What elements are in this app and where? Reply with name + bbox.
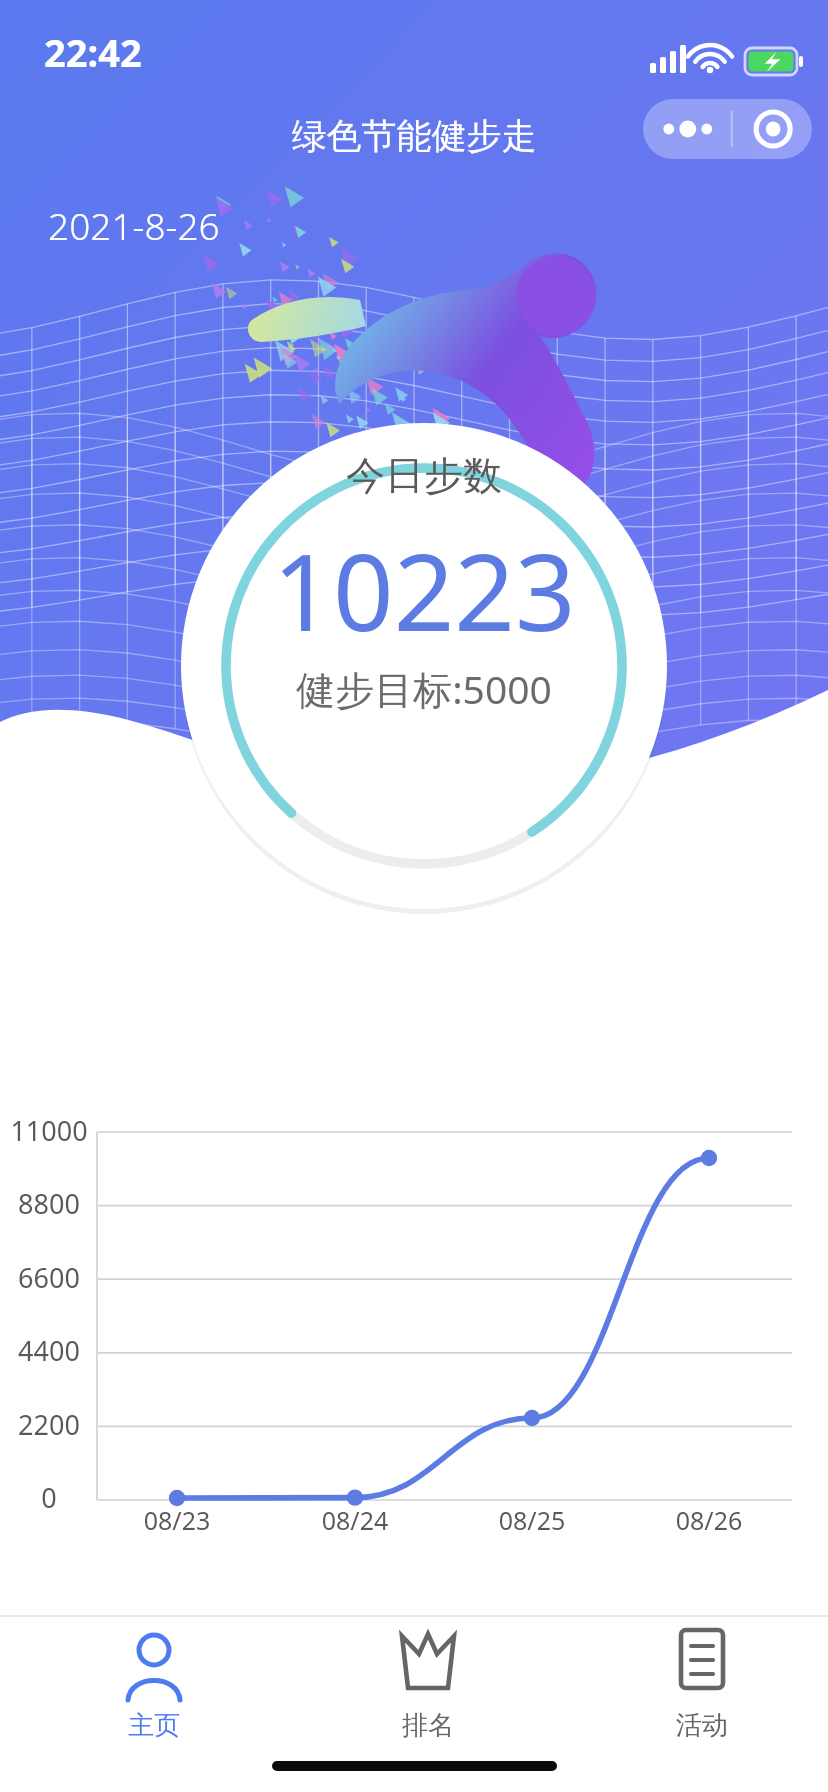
button[interactable]: 排名 bbox=[290, 1624, 566, 1764]
staticText: 10223 bbox=[164, 518, 684, 662]
button[interactable]: 活动 bbox=[564, 1624, 828, 1764]
staticText: 绿色节能健步走 bbox=[214, 114, 614, 158]
staticText: 08/24 bbox=[309, 1503, 401, 1537]
staticText: 08/26 bbox=[663, 1503, 755, 1537]
staticText: 2200 bbox=[10, 1406, 88, 1443]
staticText: 主页 bbox=[16, 1709, 292, 1742]
button[interactable]: Menu and close bbox=[643, 99, 812, 159]
staticText: 2021-8-26 bbox=[48, 200, 220, 250]
staticText: 6600 bbox=[10, 1259, 88, 1296]
staticText: 22:42 bbox=[44, 26, 142, 78]
staticText: 08/23 bbox=[131, 1503, 223, 1537]
staticText: 4400 bbox=[10, 1332, 88, 1369]
staticText: 11000 bbox=[10, 1112, 88, 1149]
staticText: 今日步数 bbox=[224, 451, 624, 500]
staticText: 08/25 bbox=[486, 1503, 578, 1537]
staticText: 0 bbox=[10, 1479, 88, 1516]
button[interactable]: 主页 bbox=[16, 1624, 292, 1764]
staticText: 健步目标:5000 bbox=[224, 662, 624, 715]
staticText: 排名 bbox=[290, 1709, 566, 1742]
staticText: 8800 bbox=[10, 1185, 88, 1222]
staticText: 活动 bbox=[564, 1709, 828, 1742]
